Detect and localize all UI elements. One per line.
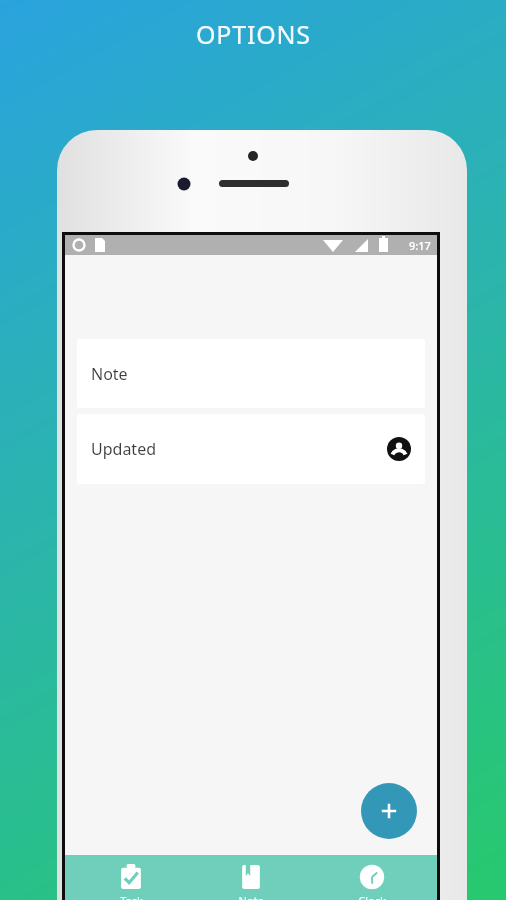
- staticText: Task: [120, 893, 143, 900]
- button[interactable]: Task: [76, 855, 186, 900]
- staticText: Updated: [91, 438, 156, 460]
- button[interactable]: Updated: [77, 414, 425, 484]
- button[interactable]: Add: [361, 783, 417, 839]
- staticText: Clock: [358, 893, 386, 900]
- staticText: Note: [91, 363, 128, 385]
- staticText: OPTIONS: [196, 17, 311, 51]
- button[interactable]: Clock: [317, 855, 427, 900]
- button[interactable]: Note: [196, 855, 306, 900]
- staticText: Note: [238, 893, 264, 900]
- staticText: 9:17: [409, 238, 431, 253]
- button[interactable]: Account: [387, 437, 411, 461]
- button[interactable]: Note: [77, 339, 425, 408]
